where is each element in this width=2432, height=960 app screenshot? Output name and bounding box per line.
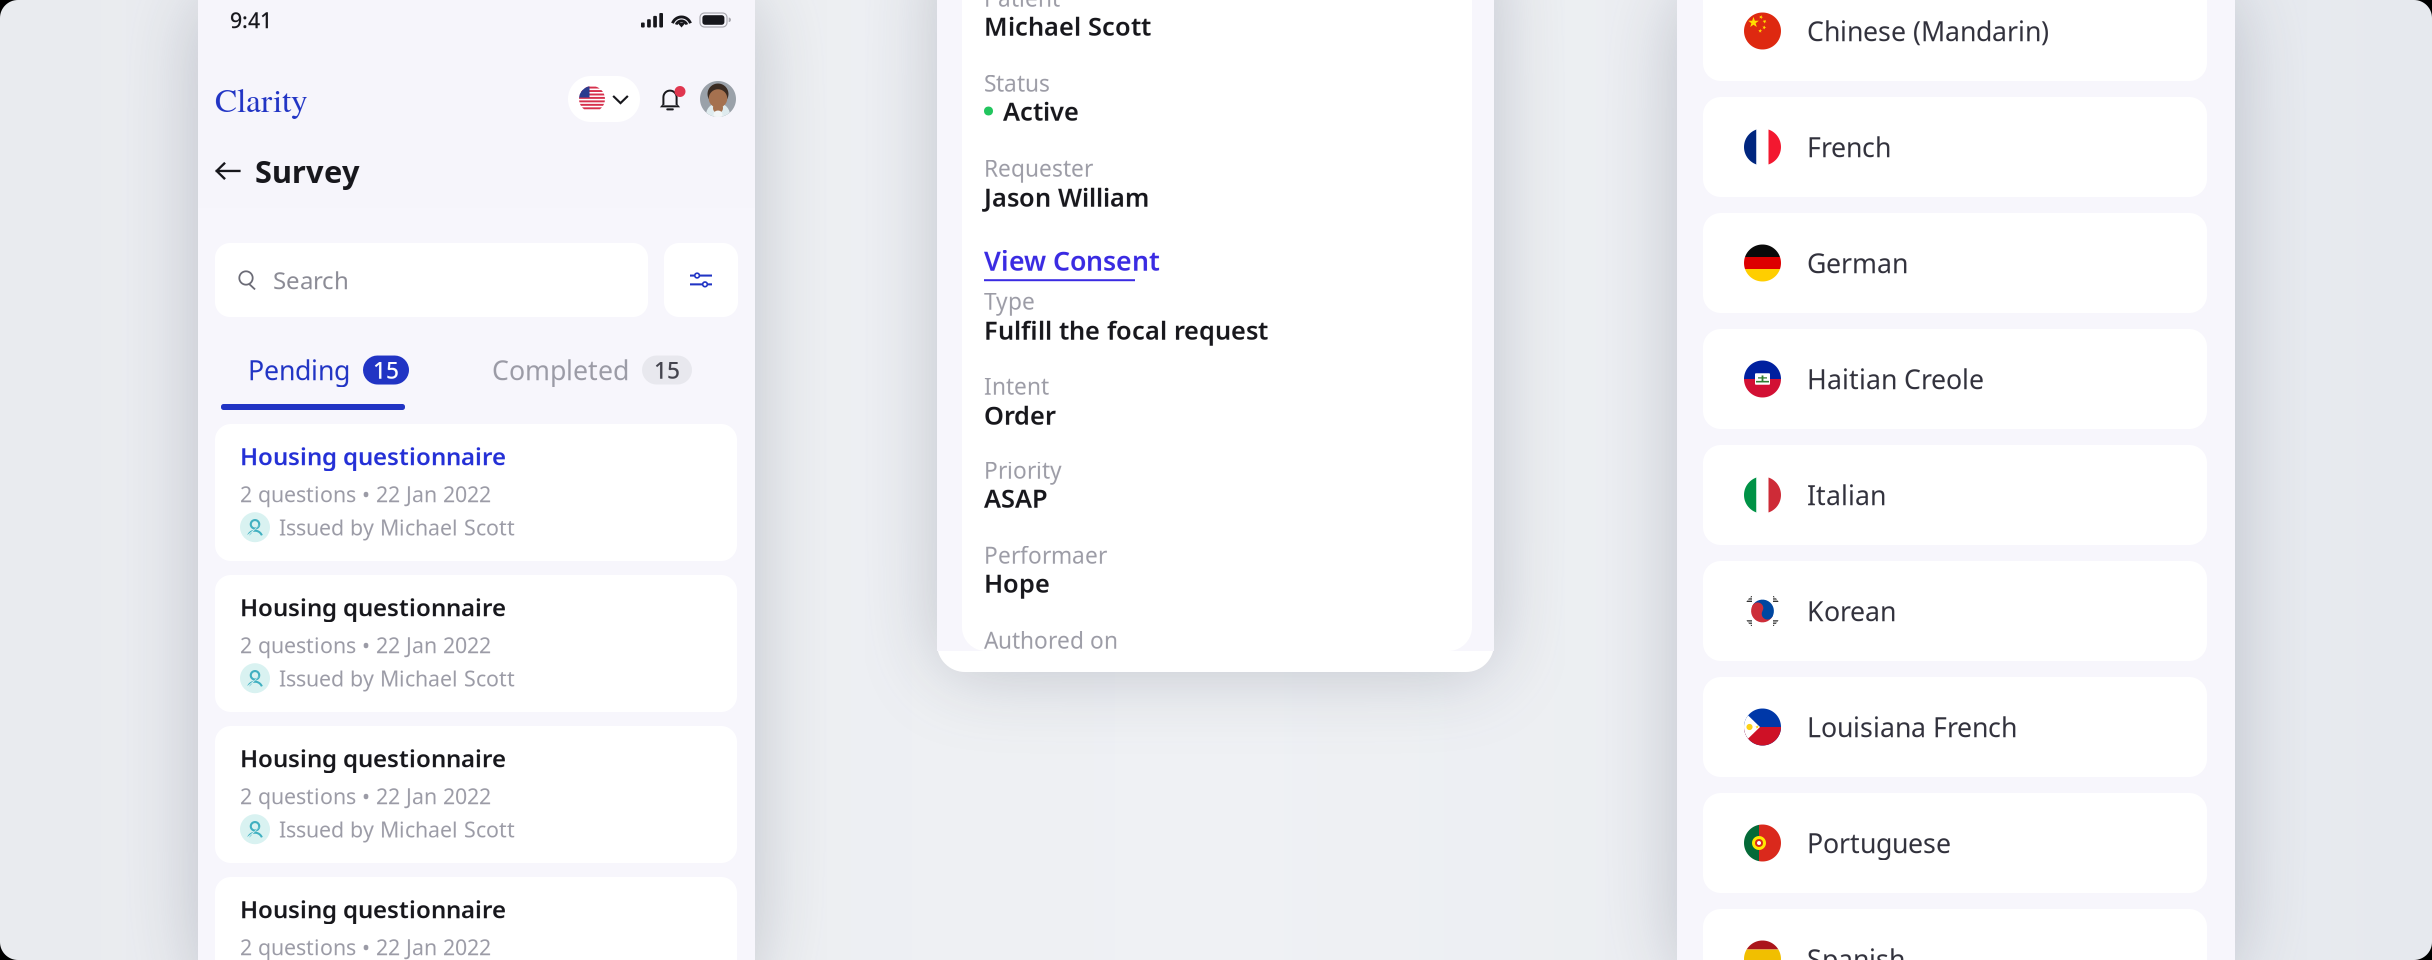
button[interactable]: Back xyxy=(214,159,255,183)
staticText: 2 questions • 22 Jan 2022 xyxy=(240,631,491,659)
staticText: Hope xyxy=(984,566,1050,600)
button[interactable]: Spanish xyxy=(1703,909,2207,960)
button[interactable]: Housing questionnaire xyxy=(215,726,737,863)
staticText: Spanish xyxy=(1807,941,1905,960)
button[interactable]: Filter xyxy=(664,243,738,317)
staticText: Priority xyxy=(984,455,1062,485)
button[interactable]: Italian xyxy=(1703,445,2207,545)
button[interactable]: German xyxy=(1703,213,2207,313)
staticText: Housing questionnaire xyxy=(240,893,506,925)
button[interactable]: Completed xyxy=(492,344,712,396)
staticText: Issued by Michael Scott xyxy=(279,513,515,541)
staticText: Authored on xyxy=(984,625,1118,655)
button[interactable]: French xyxy=(1703,97,2207,197)
staticText: 2 questions • 22 Jan 2022 xyxy=(240,933,491,960)
button[interactable]: Korean xyxy=(1703,561,2207,661)
staticText: Patient xyxy=(984,0,1060,13)
staticText: Housing questionnaire xyxy=(240,591,506,623)
staticText: 9:41 xyxy=(230,6,272,34)
staticText: Korean xyxy=(1807,593,1896,629)
button[interactable]: Housing questionnaire xyxy=(215,877,737,960)
staticText: View Consent xyxy=(984,243,1160,278)
button[interactable]: Search xyxy=(215,243,648,317)
staticText: Pending xyxy=(248,352,350,388)
staticText: Issued by Michael Scott xyxy=(279,815,515,843)
staticText: Clarity xyxy=(215,77,308,121)
button[interactable]: Language xyxy=(568,76,640,122)
staticText: Chinese (Mandarin) xyxy=(1807,13,2049,49)
staticText: Survey xyxy=(255,151,360,191)
staticText: Italian xyxy=(1807,477,1886,513)
staticText: Type xyxy=(984,286,1035,316)
staticText: Status xyxy=(984,68,1050,98)
button[interactable]: Housing questionnaire xyxy=(215,424,737,561)
staticText: Performaer xyxy=(984,540,1107,570)
staticText: Housing questionnaire xyxy=(240,742,506,774)
staticText: Housing questionnaire xyxy=(240,440,506,472)
staticText: French xyxy=(1807,129,1891,165)
staticText: 2 questions • 22 Jan 2022 xyxy=(240,782,491,810)
staticText: ASAP xyxy=(984,481,1048,515)
staticText: Order xyxy=(984,398,1056,432)
staticText: German xyxy=(1807,245,1908,281)
staticText: Jason William xyxy=(984,180,1149,214)
staticText: 15 xyxy=(654,355,680,385)
staticText: Search xyxy=(273,264,349,296)
staticText: Intent xyxy=(984,371,1049,401)
staticText: Portuguese xyxy=(1807,825,1951,861)
button[interactable]: Profile xyxy=(688,81,736,117)
staticText: 15 xyxy=(373,355,399,385)
button[interactable]: Haitian Creole xyxy=(1703,329,2207,429)
staticText: Louisiana French xyxy=(1807,709,2017,745)
staticText: Fulfill the focal request xyxy=(984,313,1268,347)
staticText: Issued by Michael Scott xyxy=(279,664,515,692)
button[interactable]: Housing questionnaire xyxy=(215,575,737,712)
button[interactable]: Louisiana French xyxy=(1703,677,2207,777)
staticText: Requester xyxy=(984,153,1093,183)
staticText: Active xyxy=(1003,94,1079,128)
button[interactable]: View Consent xyxy=(984,246,1404,278)
button[interactable]: Pending xyxy=(248,344,448,396)
button[interactable]: Portuguese xyxy=(1703,793,2207,893)
button[interactable]: Chinese (Mandarin) xyxy=(1703,0,2207,81)
staticText: Haitian Creole xyxy=(1807,361,1984,397)
staticText: Completed xyxy=(492,352,629,388)
staticText: Michael Scott xyxy=(984,9,1151,43)
staticText: 2 questions • 22 Jan 2022 xyxy=(240,480,491,508)
button[interactable]: Notifications xyxy=(640,87,688,111)
